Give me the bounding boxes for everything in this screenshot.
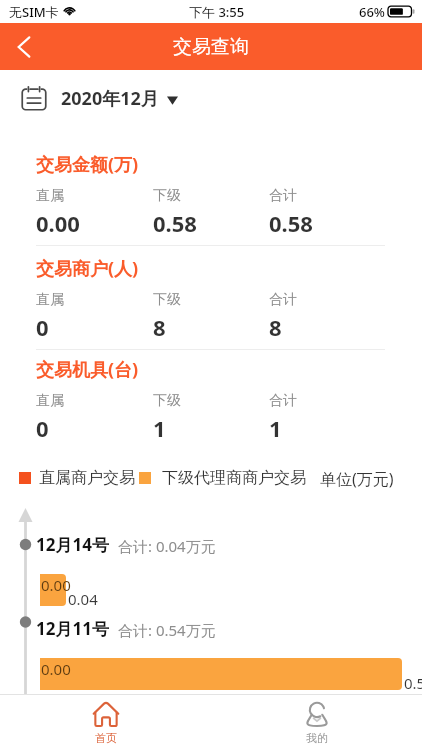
- staticText: 直属: [36, 291, 153, 309]
- staticText: 合计: 0.54万元: [118, 620, 216, 640]
- button[interactable]: 首页: [0, 695, 211, 750]
- staticText: 交易查询: [173, 35, 249, 59]
- staticText: 2020年12月: [61, 86, 159, 111]
- staticText: 下午 3:55: [189, 3, 245, 21]
- staticText: 交易商户(人): [36, 256, 139, 281]
- staticText: 0.00: [41, 575, 71, 595]
- staticText: 0.00: [41, 659, 71, 679]
- staticText: 8: [153, 312, 269, 342]
- staticText: 合计: 0.04万元: [118, 536, 216, 556]
- staticText: 0.58: [153, 208, 269, 238]
- staticText: 8: [269, 312, 385, 342]
- staticText: 交易金额(万): [36, 152, 139, 177]
- staticText: 66%: [359, 3, 385, 21]
- staticText: 下级: [153, 187, 269, 205]
- staticText: 合计: [269, 291, 385, 309]
- staticText: 0: [36, 312, 153, 342]
- staticText: 12月14号: [36, 533, 109, 556]
- staticText: 0.5: [404, 673, 422, 693]
- staticText: 0.58: [269, 208, 385, 238]
- staticText: 1: [153, 413, 269, 443]
- staticText: 单位(万元): [320, 468, 394, 488]
- staticText: 直属: [36, 187, 153, 205]
- staticText: 无SIM卡: [9, 3, 59, 21]
- staticText: 0.04: [68, 589, 98, 609]
- staticText: 1: [269, 413, 385, 443]
- staticText: 下级: [153, 392, 269, 410]
- staticText: 我的: [306, 731, 328, 745]
- staticText: 直属商户交易: [39, 468, 135, 488]
- staticText: 首页: [95, 731, 117, 745]
- button[interactable]: 我的: [211, 695, 422, 750]
- staticText: 直属: [36, 392, 153, 410]
- button[interactable]: 2020年12月: [0, 70, 422, 126]
- staticText: 0: [36, 413, 153, 443]
- staticText: 0.00: [36, 208, 153, 238]
- staticText: 合计: [269, 187, 385, 205]
- staticText: 合计: [269, 392, 385, 410]
- staticText: 下级代理商商户交易: [162, 468, 306, 488]
- button[interactable]: Back: [0, 23, 48, 70]
- staticText: 12月11号: [36, 617, 109, 640]
- staticText: 交易机具(台): [36, 357, 139, 382]
- staticText: 下级: [153, 291, 269, 309]
